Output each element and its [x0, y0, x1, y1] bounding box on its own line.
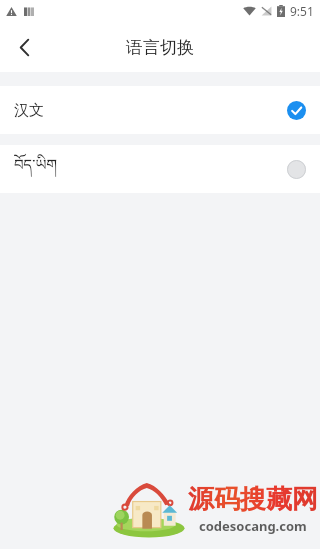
- staticText: 语言切换: [126, 37, 194, 58]
- button[interactable]: Back: [0, 23, 48, 71]
- staticText: 源码搜藏网: [188, 483, 318, 516]
- staticText: codesocang.com: [199, 517, 307, 535]
- button[interactable]: 汉文: [0, 86, 320, 134]
- staticText: 9:51: [290, 3, 314, 19]
- staticText: བོད་ཡིག: [14, 148, 57, 190]
- button[interactable]: བོད་ཡིག: [0, 145, 320, 193]
- staticText: 汉文: [14, 101, 44, 120]
